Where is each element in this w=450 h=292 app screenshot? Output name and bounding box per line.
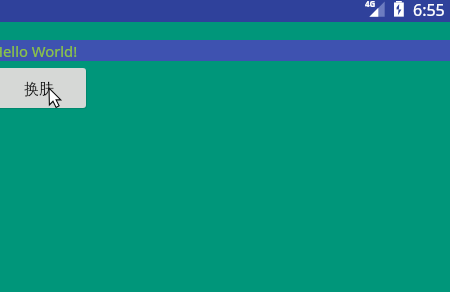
staticText: 换肤 <box>24 80 54 99</box>
other: Battery charging <box>394 1 404 18</box>
staticText: Hello World! <box>0 41 78 61</box>
button[interactable]: 换肤 <box>0 68 86 108</box>
staticText: 4G <box>365 0 376 9</box>
staticText: 6:55 <box>413 0 445 21</box>
other: Mobile signal 4G <box>365 1 385 18</box>
